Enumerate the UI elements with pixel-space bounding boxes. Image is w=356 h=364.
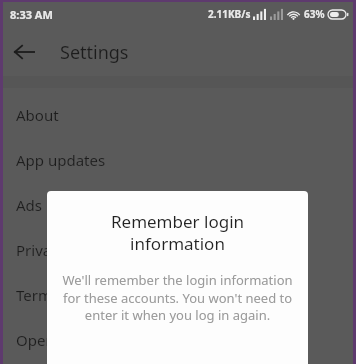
- staticText: Open source libraries: [16, 330, 167, 350]
- staticText: App updates: [16, 150, 106, 170]
- button[interactable]: App updates: [0, 137, 356, 182]
- staticText: Privacy policy: [16, 240, 111, 260]
- staticText: Settings: [60, 40, 129, 65]
- staticText: 8:33 AM: [10, 7, 53, 22]
- button[interactable]: Terms of service: [0, 272, 356, 317]
- button[interactable]: Open source libraries: [0, 317, 356, 362]
- button[interactable]: Ads: [0, 182, 356, 227]
- button[interactable]: About: [0, 92, 356, 137]
- staticText: 2.11KB/s: [208, 7, 251, 21]
- staticText: We'll remember the login information for…: [60, 271, 295, 324]
- staticText: Terms of service: [16, 285, 131, 305]
- staticText: Remember login information: [81, 210, 274, 255]
- button[interactable]: Privacy policy: [0, 227, 356, 272]
- staticText: About: [16, 105, 59, 125]
- staticText: 63%: [304, 7, 325, 21]
- staticText: Ads: [16, 195, 42, 215]
- button[interactable]: Back: [4, 32, 44, 72]
- button[interactable]: Remember login information: [47, 191, 308, 364]
